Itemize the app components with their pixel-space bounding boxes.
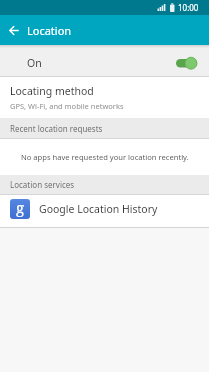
button[interactable]: Location [0, 15, 209, 45]
staticText: GPS, Wi-Fi, and mobile networks [10, 101, 124, 111]
staticText: 10:00 [178, 2, 199, 13]
staticText: Location services [10, 179, 75, 190]
staticText: Google Location History [39, 202, 158, 216]
staticText: g [16, 199, 25, 217]
staticText: Recent location requests [10, 123, 103, 134]
staticText: On [27, 56, 42, 70]
button[interactable]: Locating method [0, 77, 209, 118]
staticText: No apps have requested your location rec… [21, 152, 189, 162]
staticText: Locating method [10, 84, 94, 98]
button[interactable]: On [0, 45, 209, 76]
staticText: Location [27, 23, 72, 38]
button[interactable]: g [0, 195, 209, 227]
